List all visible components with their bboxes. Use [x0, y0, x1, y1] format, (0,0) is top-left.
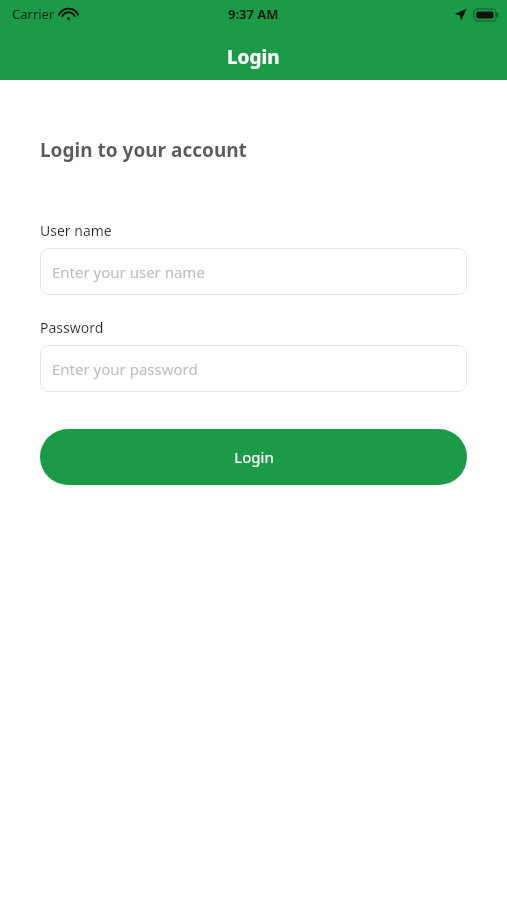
staticText: 9:37 AM — [228, 5, 279, 23]
staticText: Login to your account — [40, 137, 247, 163]
staticText: Login — [227, 44, 280, 70]
staticText: Enter your user name — [52, 262, 205, 282]
staticText: Password — [40, 318, 104, 337]
staticText: Login — [234, 447, 274, 467]
staticText: User name — [40, 221, 112, 240]
button[interactable]: Enter your user name — [40, 248, 467, 295]
staticText: Carrier — [12, 5, 55, 23]
button[interactable]: Login — [40, 429, 467, 485]
staticText: Enter your password — [52, 359, 198, 379]
button[interactable]: Enter your password — [40, 345, 467, 392]
